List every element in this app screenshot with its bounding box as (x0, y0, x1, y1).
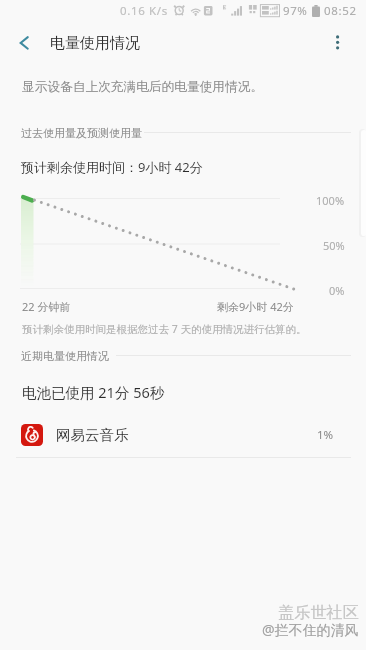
staticText: @拦不住的清风 (262, 620, 359, 639)
button[interactable]: 网易云音乐 (0, 413, 366, 457)
staticText: 显示设备自上次充满电后的电量使用情况。 (22, 79, 264, 95)
button[interactable]: More options (318, 22, 358, 62)
staticText: 预计剩余使用时间是根据您过去 7 天的使用情况进行估算的。 (22, 322, 307, 336)
staticText: 0.16 K/s (120, 3, 168, 19)
staticText: 网易云音乐 (56, 426, 129, 444)
staticText: 预计剩余使用时间：9小时 42分 (21, 158, 203, 176)
staticText: 0% (329, 283, 345, 298)
staticText: 100% (316, 193, 345, 208)
staticText: 50% (323, 238, 345, 253)
staticText: 近期电量使用情况 (21, 349, 109, 363)
staticText: 盖乐世社区 (278, 602, 359, 622)
staticText: 1% (317, 427, 334, 443)
staticText: 过去使用量及预测使用量 (21, 126, 142, 140)
staticText: 电池已使用 21分 56秒 (22, 382, 165, 402)
staticText: 剩余9小时 42分 (217, 299, 294, 314)
staticText: 22 分钟前 (22, 299, 71, 314)
button[interactable]: Back (4, 22, 44, 62)
staticText: 电量使用情况 (50, 34, 140, 53)
staticText: 97% (283, 3, 308, 19)
staticText: 08:52 (324, 3, 357, 19)
